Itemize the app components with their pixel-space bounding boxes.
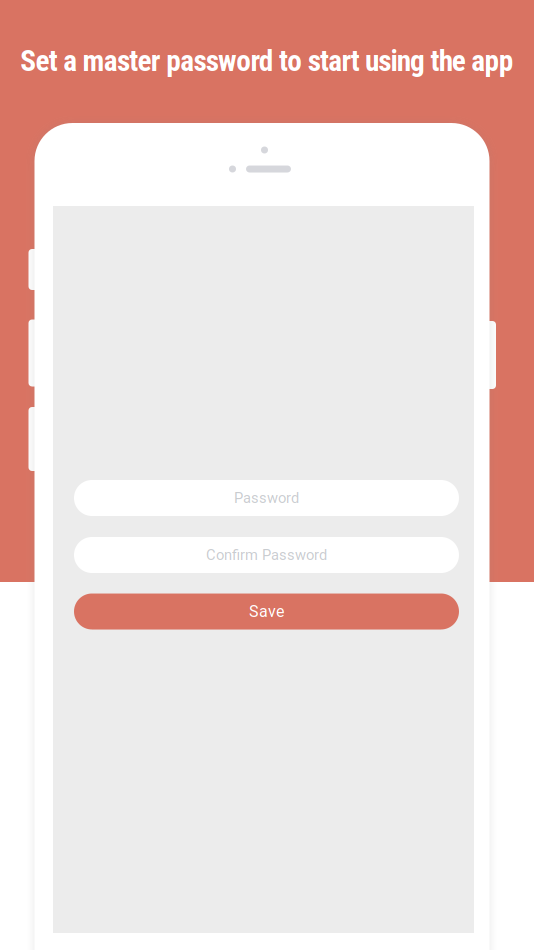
- staticText: Set a master password to start using the…: [20, 44, 514, 78]
- staticText: Password: [234, 489, 299, 507]
- button[interactable]: Confirm Password: [74, 537, 459, 573]
- button[interactable]: Save: [74, 593, 459, 629]
- staticText: Confirm Password: [206, 546, 327, 564]
- button[interactable]: Password: [74, 480, 459, 516]
- staticText: Save: [249, 602, 284, 621]
